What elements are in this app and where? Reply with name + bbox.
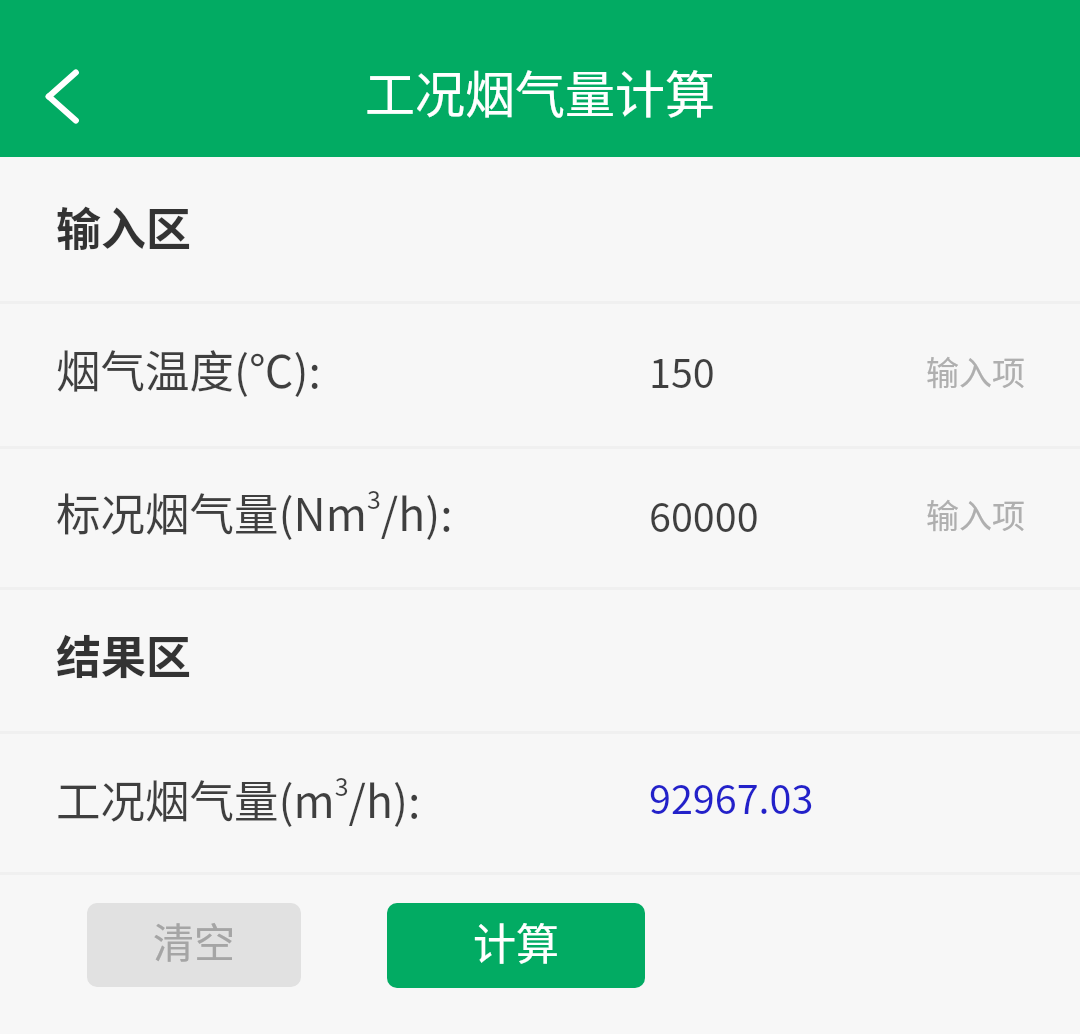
staticText: 标况烟气量(Nm3/h): xyxy=(56,479,453,543)
button[interactable]: 计算 xyxy=(387,903,645,988)
staticText: 60000 xyxy=(649,486,759,543)
button[interactable]: Back xyxy=(19,66,79,126)
staticText: 输入项 xyxy=(926,347,1025,395)
staticText: 工况烟气量(m3/h): xyxy=(56,766,421,830)
staticText: 清空 xyxy=(153,910,235,969)
staticText: 150 xyxy=(649,342,715,399)
staticText: 计算 xyxy=(473,910,559,972)
button[interactable]: 清空 xyxy=(87,903,301,987)
staticText: 92967.03 xyxy=(649,768,814,825)
staticText: 输入项 xyxy=(926,490,1025,538)
staticText: 工况烟气量计算 xyxy=(365,55,715,127)
staticText: 结果区 xyxy=(56,622,192,687)
staticText: 烟气温度(℃): xyxy=(56,336,321,400)
staticText: 输入区 xyxy=(56,194,192,259)
